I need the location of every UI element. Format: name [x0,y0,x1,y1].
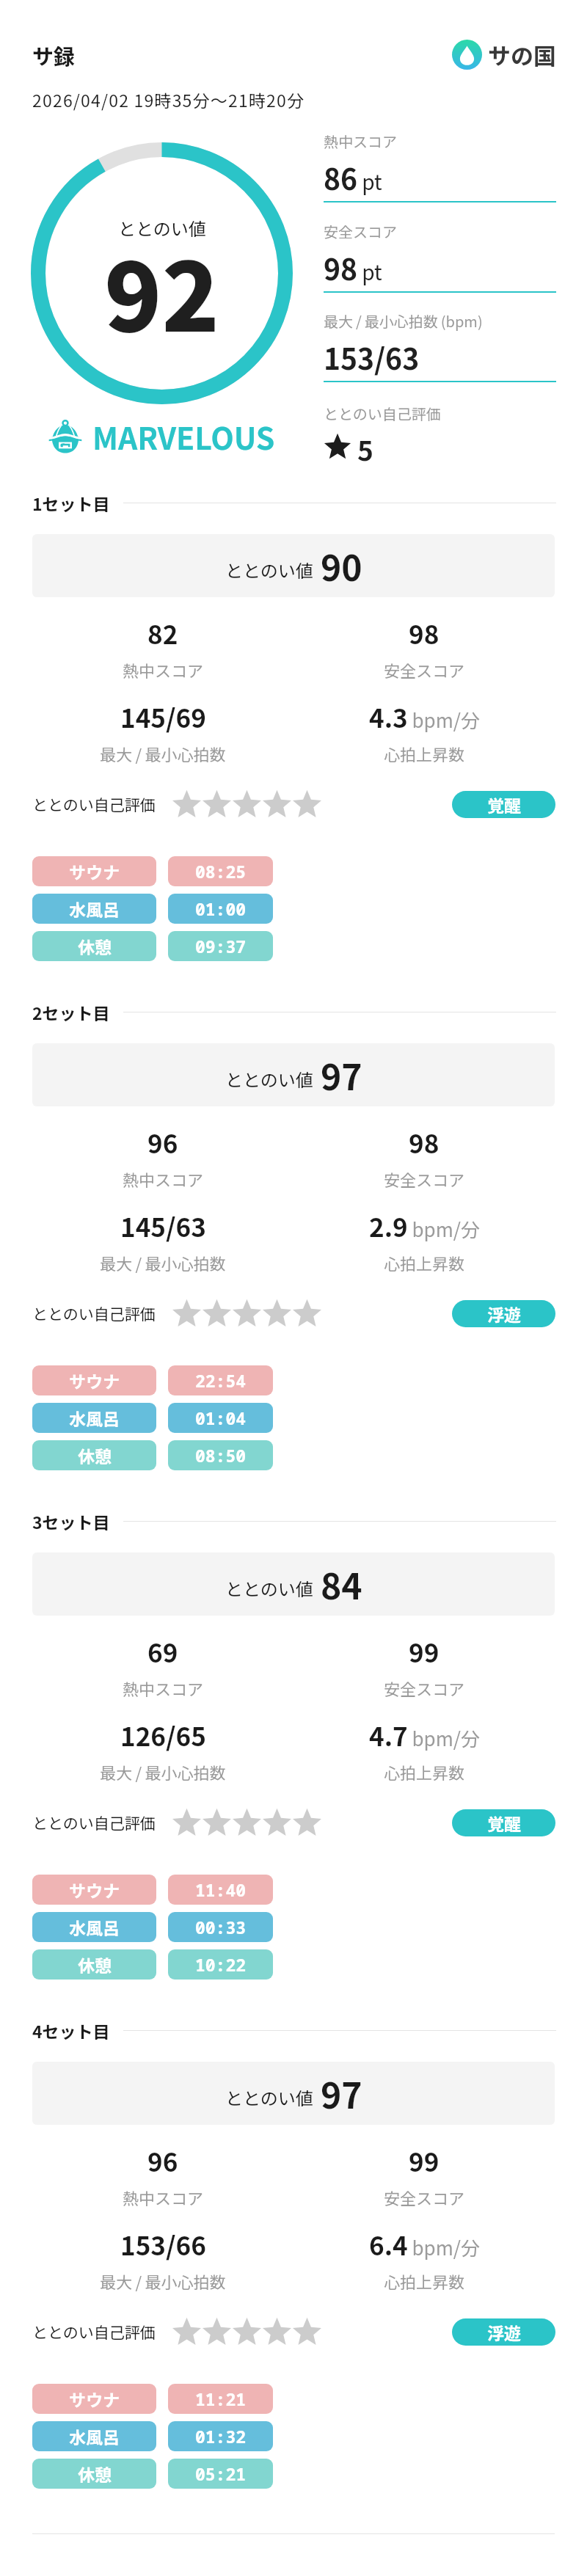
staticText: 22:54 [195,1369,247,1392]
staticText: 98 [409,614,440,652]
staticText: 99 [409,1632,440,1670]
button[interactable]: 覚醒 [452,1809,555,1836]
button[interactable]: サウナ [32,1365,156,1395]
staticText: サウナ [69,859,120,883]
staticText: 84 [321,1558,362,1610]
staticText: サウナ [69,1878,120,1902]
button[interactable]: 休憩 [32,1949,156,1980]
button[interactable]: ととのい値 [32,534,555,597]
staticText: 安全スコア [384,2186,465,2209]
staticText: 153/63 [324,337,420,378]
staticText: サの国 [488,38,556,71]
staticText: 4セット目 [32,2018,110,2043]
staticText: ととのい自己評価 [32,1811,156,1834]
staticText: 安全スコア [384,1676,465,1700]
staticText: 10:22 [195,1953,247,1976]
staticText: 00:33 [195,1916,247,1938]
staticText: 安全スコア [384,1167,465,1191]
staticText: サウナ [69,2387,120,2411]
button[interactable]: 11:40 [168,1875,273,1905]
button[interactable]: 11:21 [168,2384,273,2414]
button[interactable]: ととのい値 [32,2062,555,2125]
button[interactable]: 01:04 [168,1403,273,1433]
staticText: 2.9 bpm/分 [369,1207,480,1244]
button[interactable]: 08:50 [168,1440,273,1470]
staticText: 水風呂 [69,897,120,921]
button[interactable]: 10:22 [168,1949,273,1980]
staticText: 水風呂 [69,2424,120,2448]
button[interactable]: ととのい値 [32,1552,555,1616]
staticText: 熱中スコア [123,658,204,682]
staticText: 11:40 [195,1878,247,1901]
staticText: 153/66 [120,2225,206,2263]
staticText: ととのい自己評価 [32,2321,156,2343]
staticText: 96 [147,2142,178,2179]
button[interactable]: 水風呂 [32,1912,156,1942]
staticText: 熱中スコア [123,1167,204,1191]
staticText: 98 [409,1123,440,1161]
button[interactable]: 05:21 [168,2459,273,2489]
staticText: 82 [147,614,178,652]
staticText: 熱中スコア [123,2186,204,2209]
button[interactable]: 休憩 [32,1440,156,1470]
staticText: 最大 / 最小心拍数 (bpm) [324,310,483,332]
button[interactable]: サウナ [32,2384,156,2414]
button[interactable]: 22:54 [168,1365,273,1395]
button[interactable]: 休憩 [32,931,156,961]
staticText: ととのい値 [225,557,313,583]
button[interactable]: 水風呂 [32,894,156,924]
staticText: 最大 / 最小心拍数 [100,1760,226,1784]
staticText: 08:25 [195,860,247,883]
button[interactable]: 09:37 [168,931,273,961]
button[interactable]: サウナ [32,1875,156,1905]
staticText: 69 [147,1632,178,1670]
staticText: 5 [357,429,373,464]
staticText: 水風呂 [69,1406,120,1430]
staticText: ととのい自己評価 [32,793,156,815]
staticText: ととのい自己評価 [32,1302,156,1324]
staticText: ととのい自己評価 [324,403,441,424]
staticText: ととのい値 [225,1575,313,1601]
staticText: 最大 / 最小心拍数 [100,742,226,765]
button[interactable]: 浮遊 [452,1300,555,1327]
button[interactable]: 浮遊 [452,2318,555,2346]
button[interactable]: 00:33 [168,1912,273,1942]
staticText: 水風呂 [69,1915,120,1939]
button[interactable]: 水風呂 [32,1403,156,1433]
staticText: MARVELOUS [92,415,275,458]
staticText: 96 [147,1123,178,1161]
staticText: 01:04 [195,1406,247,1429]
staticText: 休憩 [78,1952,112,1977]
staticText: 最大 / 最小心拍数 [100,1251,226,1274]
staticText: 98 pt [324,247,382,288]
staticText: 01:00 [195,897,247,920]
button[interactable]: 休憩 [32,2459,156,2489]
staticText: 2セット目 [32,1000,110,1024]
staticText: 01:32 [195,2425,247,2448]
staticText: 3セット目 [32,1509,110,1533]
staticText: 休憩 [78,2462,112,2486]
staticText: 11:21 [195,2387,247,2410]
button[interactable]: 08:25 [168,856,273,886]
staticText: ととのい値 [118,215,206,241]
staticText: 最大 / 最小心拍数 [100,2269,226,2293]
staticText: 覚醒 [487,1811,521,1835]
staticText: 92 [104,222,220,359]
staticText: 97 [321,2068,362,2119]
staticText: 安全スコア [384,658,465,682]
button[interactable]: 覚醒 [452,791,555,818]
staticText: 熱中スコア [324,131,397,152]
button[interactable]: サウナ [32,856,156,886]
button[interactable]: 01:00 [168,894,273,924]
staticText: 休憩 [78,934,112,958]
staticText: 6.4 bpm/分 [369,2225,480,2263]
staticText: 浮遊 [487,1302,521,1326]
button[interactable]: ととのい値 [32,1043,555,1106]
button[interactable]: 01:32 [168,2421,273,2451]
staticText: 08:50 [195,1444,247,1467]
staticText: 145/69 [120,698,206,735]
button[interactable]: 水風呂 [32,2421,156,2451]
staticText: 休憩 [78,1443,112,1467]
staticText: 97 [321,1049,362,1101]
staticText: ととのい値 [225,2084,313,2110]
